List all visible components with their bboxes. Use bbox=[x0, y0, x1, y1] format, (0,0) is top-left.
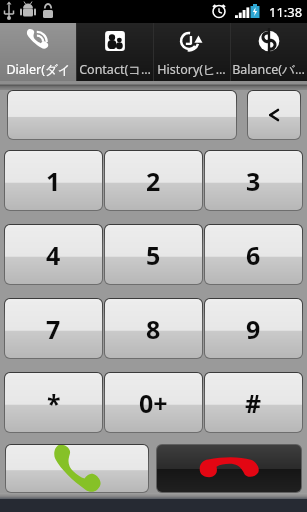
staticText: 6 bbox=[246, 238, 261, 272]
button[interactable]: Dialer(ダイ bbox=[0, 23, 76, 81]
staticText: History(ヒ… bbox=[157, 61, 226, 78]
button[interactable]: 7 bbox=[4, 298, 103, 359]
staticText: 11:38 bbox=[269, 3, 303, 21]
button[interactable]: 1 bbox=[4, 150, 103, 211]
staticText: 0+ bbox=[139, 386, 168, 420]
staticText: 2 bbox=[146, 164, 161, 198]
button[interactable]: Backspace bbox=[247, 90, 301, 140]
staticText: Contact(コ… bbox=[79, 61, 151, 78]
staticText: 4 bbox=[46, 238, 61, 272]
button[interactable] bbox=[7, 90, 237, 140]
button[interactable]: 6 bbox=[204, 224, 303, 285]
staticText: Balance(バ… bbox=[232, 61, 305, 78]
button[interactable]: 2 bbox=[104, 150, 203, 211]
staticText: 5 bbox=[146, 238, 161, 272]
button[interactable]: Balance(バ… bbox=[230, 23, 307, 81]
staticText: 7 bbox=[46, 312, 61, 346]
button[interactable]: Contact(コ… bbox=[76, 23, 153, 81]
button[interactable]: # bbox=[204, 372, 303, 433]
staticText: Dialer(ダイ bbox=[6, 61, 71, 78]
button[interactable]: History(ヒ… bbox=[153, 23, 230, 81]
staticText: 3 bbox=[246, 164, 261, 198]
staticText: 1 bbox=[46, 164, 61, 198]
button[interactable]: 9 bbox=[204, 298, 303, 359]
button[interactable]: End call bbox=[157, 445, 301, 492]
staticText: 8 bbox=[146, 312, 161, 346]
button[interactable]: 3 bbox=[204, 150, 303, 211]
button[interactable]: Call bbox=[5, 444, 149, 493]
button[interactable]: 4 bbox=[4, 224, 103, 285]
staticText: * bbox=[47, 386, 61, 420]
button[interactable]: 8 bbox=[104, 298, 203, 359]
button[interactable]: 5 bbox=[104, 224, 203, 285]
button[interactable]: 0+ bbox=[104, 372, 203, 433]
staticText: # bbox=[245, 386, 262, 420]
staticText: 9 bbox=[246, 312, 261, 346]
button[interactable]: * bbox=[4, 372, 103, 433]
